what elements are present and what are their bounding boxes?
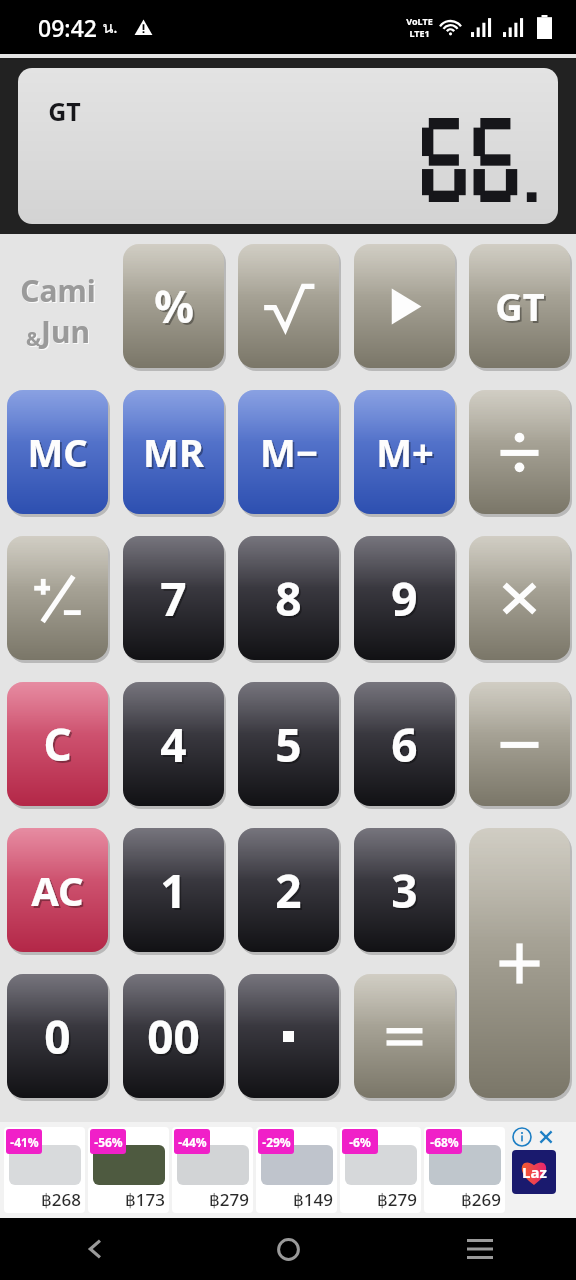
button[interactable]: Back: [0, 1218, 192, 1280]
button[interactable]: Plus: [469, 828, 570, 1098]
staticText: -56%: [94, 1134, 123, 1150]
button[interactable]: M−: [238, 390, 339, 514]
button[interactable]: Multiply: [469, 536, 570, 660]
staticText: 1: [162, 861, 189, 924]
staticText: -68%: [430, 1134, 459, 1150]
staticText: 6: [393, 715, 420, 778]
staticText: 4: [162, 715, 189, 778]
staticText: 00: [147, 1005, 200, 1068]
staticText: Laz: [522, 1162, 547, 1182]
button[interactable]: MR: [123, 390, 224, 514]
staticText: -41%: [10, 1134, 39, 1150]
button[interactable]: MC: [7, 390, 108, 514]
staticText: 9: [393, 569, 420, 632]
staticText: M−: [262, 428, 320, 480]
button[interactable]: Home: [192, 1218, 384, 1280]
staticText: 1: [160, 859, 187, 922]
button[interactable]: Ad information: [512, 1127, 532, 1147]
staticText: 0: [46, 1007, 73, 1070]
staticText: ฿173: [125, 1188, 165, 1211]
staticText: M+: [376, 426, 434, 478]
button[interactable]: 5: [238, 682, 339, 806]
staticText: AC: [31, 863, 84, 917]
button[interactable]: 0: [7, 974, 108, 1098]
staticText: น.: [102, 15, 118, 40]
button[interactable]: Close ad: [536, 1127, 556, 1147]
staticText: AC: [33, 865, 86, 919]
staticText: C: [43, 714, 72, 774]
button[interactable]: Decimal point: [238, 974, 339, 1098]
button[interactable]: Recent apps: [384, 1218, 576, 1280]
button[interactable]: Plus minus: [7, 536, 108, 660]
staticText: &: [27, 326, 42, 353]
staticText: %: [154, 276, 194, 336]
button[interactable]: 00: [123, 974, 224, 1098]
staticText: 0: [44, 1005, 71, 1068]
staticText: 2: [275, 859, 302, 922]
staticText: MC: [27, 426, 88, 478]
staticText: 2: [277, 861, 304, 924]
staticText: C: [45, 716, 74, 776]
staticText: 8: [277, 569, 304, 632]
button[interactable]: %: [123, 244, 224, 368]
button[interactable]: C: [7, 682, 108, 806]
staticText: ฿268: [41, 1188, 81, 1211]
staticText: GT: [495, 280, 545, 332]
staticText: MR: [145, 428, 206, 480]
staticText: ฿279: [377, 1188, 417, 1211]
button[interactable]: Square root: [238, 244, 339, 368]
staticText: MC: [29, 428, 90, 480]
button[interactable]: -6%: [340, 1127, 421, 1213]
button[interactable]: Minus: [469, 682, 570, 806]
staticText: 7: [162, 569, 189, 632]
staticText: M+: [378, 428, 436, 480]
staticText: M−: [260, 426, 318, 478]
button[interactable]: 9: [354, 536, 455, 660]
button[interactable]: Play: [354, 244, 455, 368]
button[interactable]: Equals: [354, 974, 455, 1098]
staticText: GT: [48, 94, 81, 128]
button[interactable]: 8: [238, 536, 339, 660]
staticText: &: [26, 325, 41, 352]
button[interactable]: 1: [123, 828, 224, 952]
staticText: 6: [391, 713, 418, 776]
button[interactable]: -56%: [88, 1127, 169, 1213]
button[interactable]: Lazada: [512, 1150, 556, 1194]
staticText: 8: [275, 567, 302, 630]
staticText: 5: [277, 715, 304, 778]
button[interactable]: -29%: [256, 1127, 337, 1213]
button[interactable]: 3: [354, 828, 455, 952]
button[interactable]: M+: [354, 390, 455, 514]
button[interactable]: -41%: [4, 1127, 85, 1213]
button[interactable]: 6: [354, 682, 455, 806]
staticText: LTE1: [409, 27, 430, 39]
button[interactable]: GT: [469, 244, 570, 368]
staticText: 7: [160, 567, 187, 630]
staticText: MR: [143, 426, 204, 478]
staticText: 00: [149, 1007, 202, 1070]
button[interactable]: AC: [7, 828, 108, 952]
staticText: Cami: [20, 270, 96, 311]
button[interactable]: -68%: [424, 1127, 505, 1213]
staticText: 3: [393, 861, 420, 924]
staticText: GT: [497, 282, 547, 334]
staticText: VoLTE: [406, 15, 433, 27]
staticText: %: [156, 278, 196, 338]
staticText: 3: [391, 859, 418, 922]
staticText: 9: [391, 567, 418, 630]
button[interactable]: Divide: [469, 390, 570, 514]
staticText: ฿279: [209, 1188, 249, 1211]
staticText: 09:42: [38, 12, 97, 43]
staticText: Cami: [21, 271, 97, 312]
button[interactable]: 7: [123, 536, 224, 660]
button[interactable]: 2: [238, 828, 339, 952]
button[interactable]: -44%: [172, 1127, 253, 1213]
button[interactable]: 4: [123, 682, 224, 806]
staticText: -6%: [349, 1134, 371, 1150]
staticText: ฿149: [293, 1188, 333, 1211]
staticText: -29%: [262, 1134, 291, 1150]
staticText: 5: [275, 713, 302, 776]
staticText: Jun: [42, 312, 91, 353]
staticText: ฿269: [461, 1188, 501, 1211]
staticText: Jun: [41, 311, 90, 352]
